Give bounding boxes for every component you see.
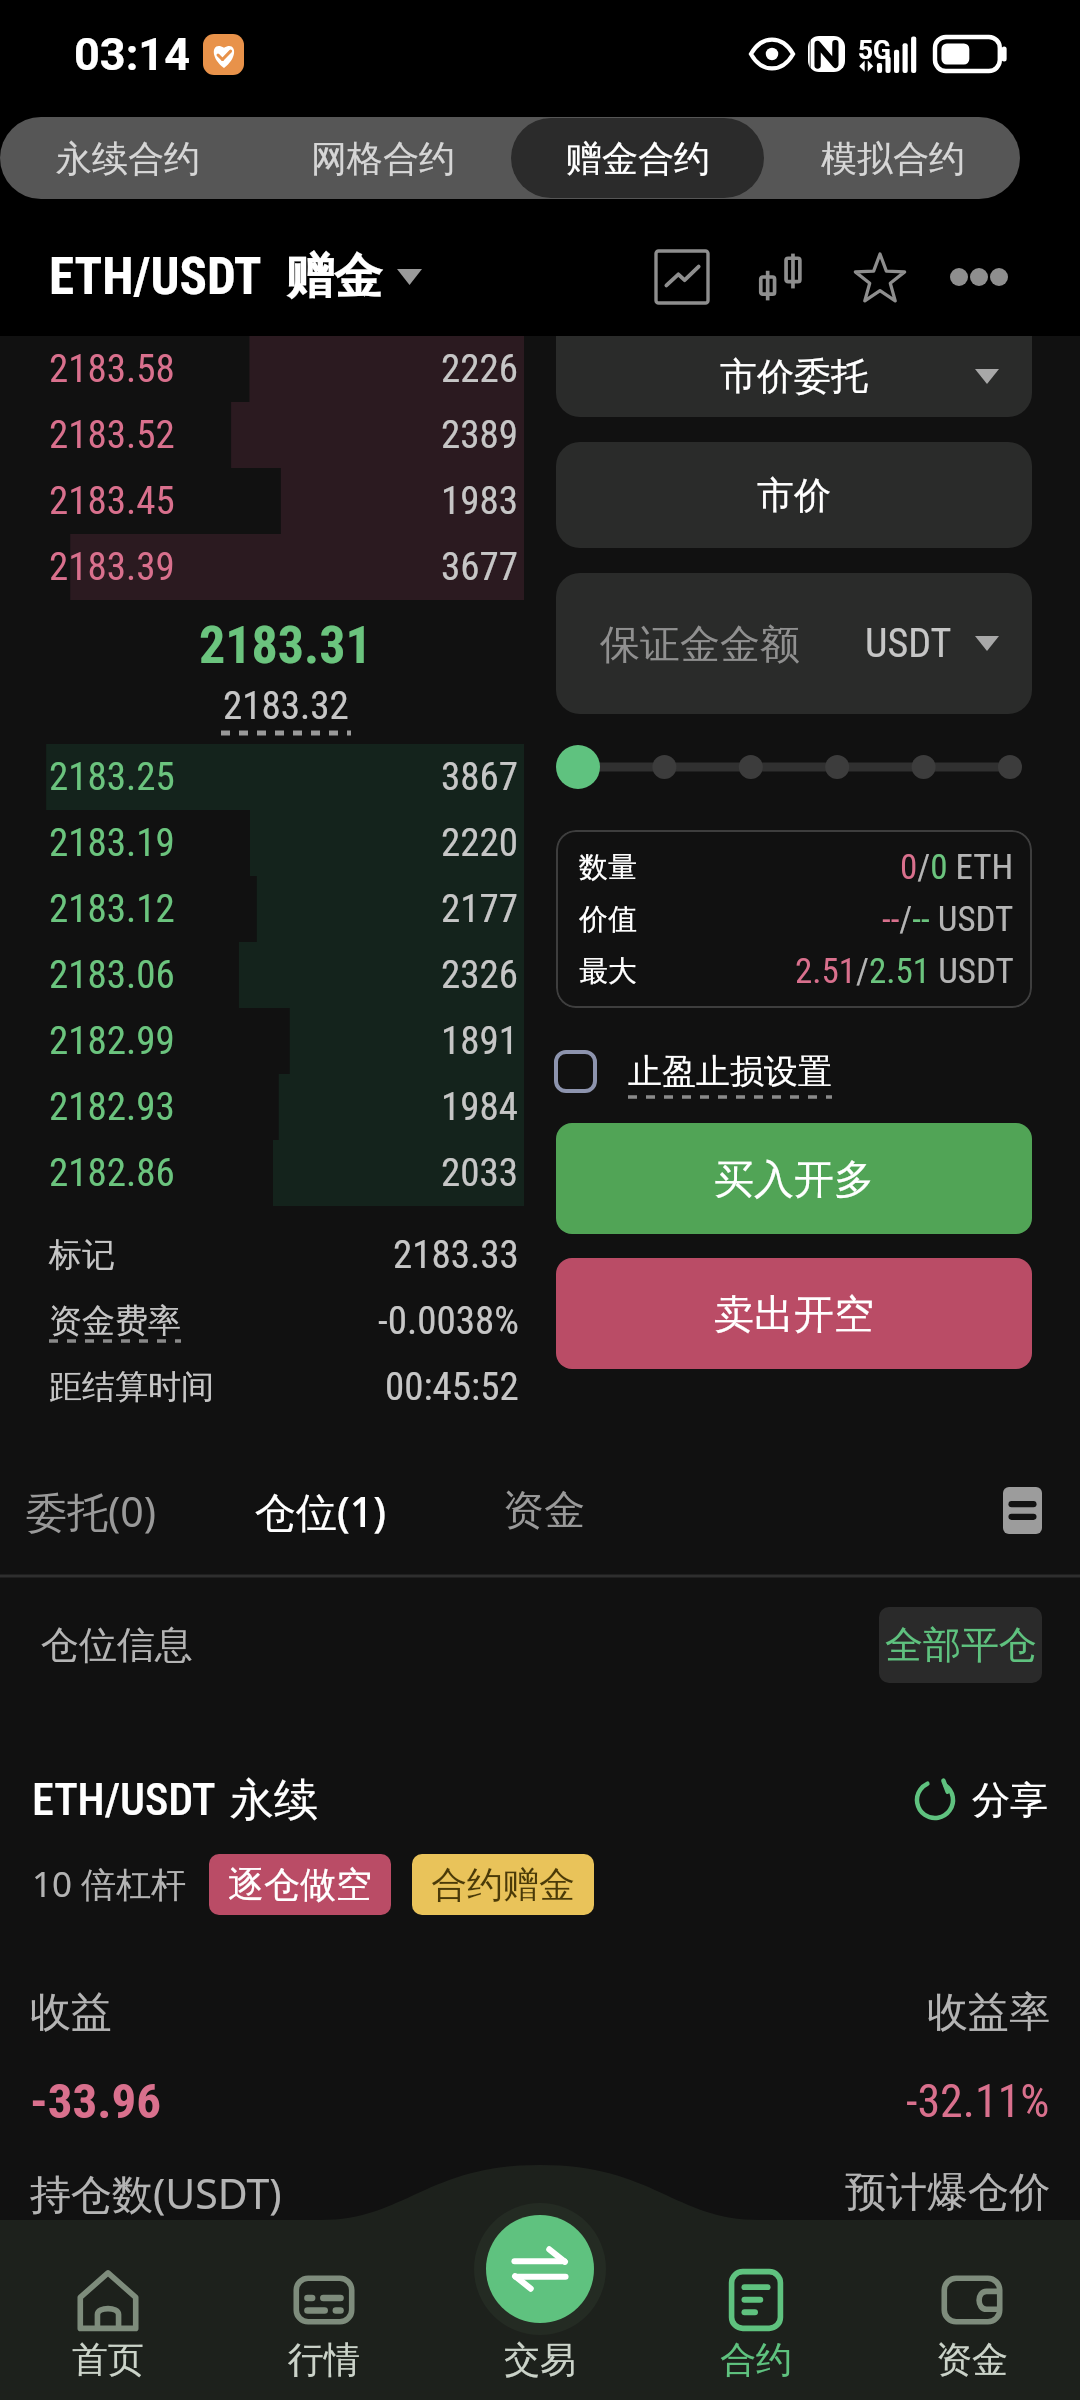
button[interactable]: 首页: [0, 2165, 216, 2400]
staticText: -32.11%: [906, 2074, 1050, 2128]
button[interactable]: 委托(0): [26, 1483, 157, 1539]
staticText: 永续合约: [56, 136, 200, 181]
staticText: 模拟合约: [821, 136, 965, 181]
staticText: 2220: [441, 820, 519, 866]
button[interactable]: ETH/USDT: [49, 247, 422, 307]
staticText: 2183.32: [223, 683, 349, 729]
button[interactable]: 市价: [556, 442, 1032, 548]
staticText: 2182.86: [49, 1150, 175, 1196]
staticText: 2183.33: [393, 1232, 519, 1278]
button[interactable]: 保证金金额: [556, 573, 1032, 714]
staticText: 止盈止损设置: [628, 1050, 832, 1093]
button[interactable]: Trade: [486, 2215, 594, 2323]
staticText: 市价委托: [720, 353, 868, 400]
staticText: 收益率: [927, 1987, 1050, 2039]
staticText: 网格合约: [311, 136, 455, 181]
button[interactable]: 行情: [216, 2165, 432, 2400]
staticText: -33.96: [30, 2073, 161, 2130]
staticText: 资金费率: [49, 1300, 181, 1342]
staticText: 2183.19: [49, 820, 175, 866]
staticText: 卖出开空: [714, 1289, 874, 1339]
button[interactable]: 2183.58: [0, 336, 524, 402]
staticText: 全部平仓: [885, 1621, 1037, 1669]
staticText: 收益: [30, 1987, 112, 2039]
button[interactable]: 逐仓做空: [209, 1854, 391, 1915]
staticText: 2183.52: [49, 412, 175, 458]
button[interactable]: 永续合约: [1, 118, 254, 198]
staticText: 10 倍杠杆: [32, 1860, 187, 1908]
staticText: 2389: [441, 412, 519, 458]
button[interactable]: 2183.06: [0, 942, 524, 1008]
button[interactable]: More: [929, 227, 1028, 327]
staticText: 2033: [441, 1150, 519, 1196]
button[interactable]: 市价委托: [556, 336, 1032, 417]
staticText: 2183.45: [49, 478, 175, 524]
staticText: 合约: [720, 2337, 792, 2382]
button[interactable]: 合约: [648, 2165, 864, 2400]
button[interactable]: 合约赠金: [412, 1854, 594, 1915]
staticText: 最大: [579, 953, 637, 990]
staticText: 03:14: [74, 28, 190, 81]
button[interactable]: 卖出开空: [556, 1258, 1032, 1369]
button[interactable]: 模拟合约: [766, 118, 1019, 198]
staticText: 5G: [858, 35, 891, 65]
button[interactable]: 2183.52: [0, 402, 524, 468]
button[interactable]: 分享: [914, 1776, 1048, 1824]
button[interactable]: 2183.19: [0, 810, 524, 876]
staticText: 2183.25: [49, 754, 175, 800]
staticText: 交易: [504, 2337, 576, 2382]
button[interactable]: Favorite: [830, 227, 929, 327]
button[interactable]: Filter: [1003, 1487, 1042, 1534]
staticText: 2183.12: [49, 886, 175, 932]
staticText: 合约赠金: [431, 1862, 575, 1907]
staticText: 00:45:52: [385, 1364, 519, 1410]
button[interactable]: 买入开多: [556, 1123, 1032, 1234]
button[interactable]: 2183.12: [0, 876, 524, 942]
staticText: 距结算时间: [49, 1366, 214, 1408]
staticText: 永续: [230, 1773, 318, 1828]
staticText: 1891: [441, 1018, 519, 1064]
staticText: -0.0038%: [378, 1298, 519, 1344]
staticText: 预计爆仓价: [845, 2167, 1050, 2219]
staticText: 分享: [972, 1776, 1048, 1824]
staticText: USDT: [865, 620, 952, 667]
button[interactable]: 网格合约: [256, 118, 509, 198]
staticText: 2183.58: [49, 346, 175, 392]
button[interactable]: 交易: [432, 2165, 648, 2400]
staticText: 2226: [441, 346, 519, 392]
staticText: ETH/USDT: [49, 247, 262, 307]
button[interactable]: 2183.39: [0, 534, 524, 600]
button[interactable]: 2182.99: [0, 1008, 524, 1074]
button[interactable]: 仓位(1): [255, 1483, 387, 1539]
button[interactable]: 2182.93: [0, 1074, 524, 1140]
staticText: 首页: [72, 2337, 144, 2382]
staticText: 买入开多: [714, 1154, 874, 1204]
staticText: 数量: [579, 849, 637, 886]
button[interactable]: 2182.86: [0, 1140, 524, 1206]
button[interactable]: 资金: [503, 1485, 585, 1537]
staticText: --/-- USDT: [882, 899, 1014, 940]
staticText: ETH/USDT: [32, 1774, 216, 1826]
staticText: 行情: [288, 2337, 360, 2382]
staticText: 市价: [757, 472, 831, 519]
staticText: 赠金合约: [566, 136, 710, 181]
button[interactable]: 资金: [864, 2165, 1080, 2400]
staticText: 价值: [579, 901, 637, 938]
button[interactable]: Depth: [731, 227, 830, 327]
staticText: 标记: [49, 1234, 115, 1276]
staticText: 2182.99: [49, 1018, 175, 1064]
button[interactable]: 赠金合约: [511, 118, 764, 198]
staticText: 2177: [441, 886, 519, 932]
staticText: 2.51/2.51 USDT: [795, 951, 1014, 992]
staticText: 2326: [441, 952, 519, 998]
staticText: 资金: [936, 2337, 1008, 2382]
button[interactable]: 全部平仓: [879, 1607, 1042, 1683]
button[interactable]: 2183.25: [0, 744, 524, 810]
staticText: 2182.93: [49, 1084, 175, 1130]
staticText: 保证金金额: [600, 619, 800, 669]
button[interactable]: Chart: [632, 227, 731, 327]
staticText: 2183.31: [199, 615, 372, 676]
staticText: 2183.39: [49, 544, 175, 590]
button[interactable]: 止盈止损设置: [556, 1040, 1032, 1102]
button[interactable]: 2183.45: [0, 468, 524, 534]
